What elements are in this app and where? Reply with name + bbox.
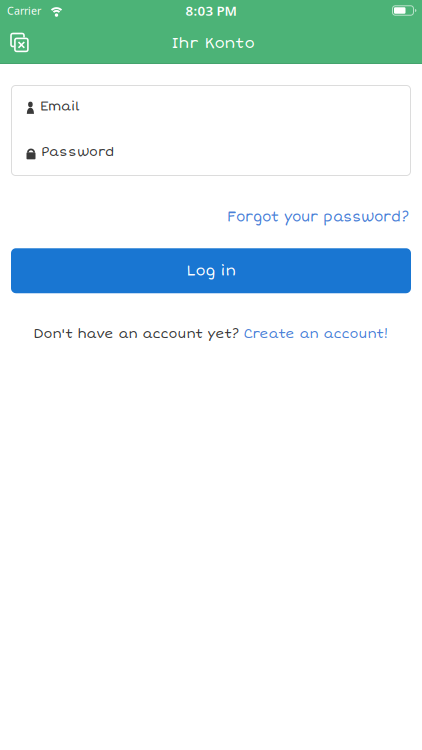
staticText: 8:03 PM	[185, 2, 236, 19]
staticText: Log in	[186, 261, 235, 280]
staticText: Email	[40, 98, 79, 114]
staticText: Don't have an account yet?	[33, 326, 238, 342]
button[interactable]: Close	[0, 26, 35, 57]
staticText: Carrier	[7, 3, 41, 18]
button[interactable]: Forgot your password?	[227, 208, 409, 226]
button[interactable]: Password	[11, 130, 411, 176]
button[interactable]: Create an account!	[243, 326, 388, 342]
button[interactable]: Email	[11, 85, 411, 130]
button[interactable]: Log in	[11, 248, 411, 293]
staticText: Create an account!	[243, 326, 388, 342]
staticText: Ihr Konto	[171, 34, 254, 52]
staticText: Forgot your password?	[227, 208, 409, 226]
staticText: Password	[41, 144, 114, 160]
